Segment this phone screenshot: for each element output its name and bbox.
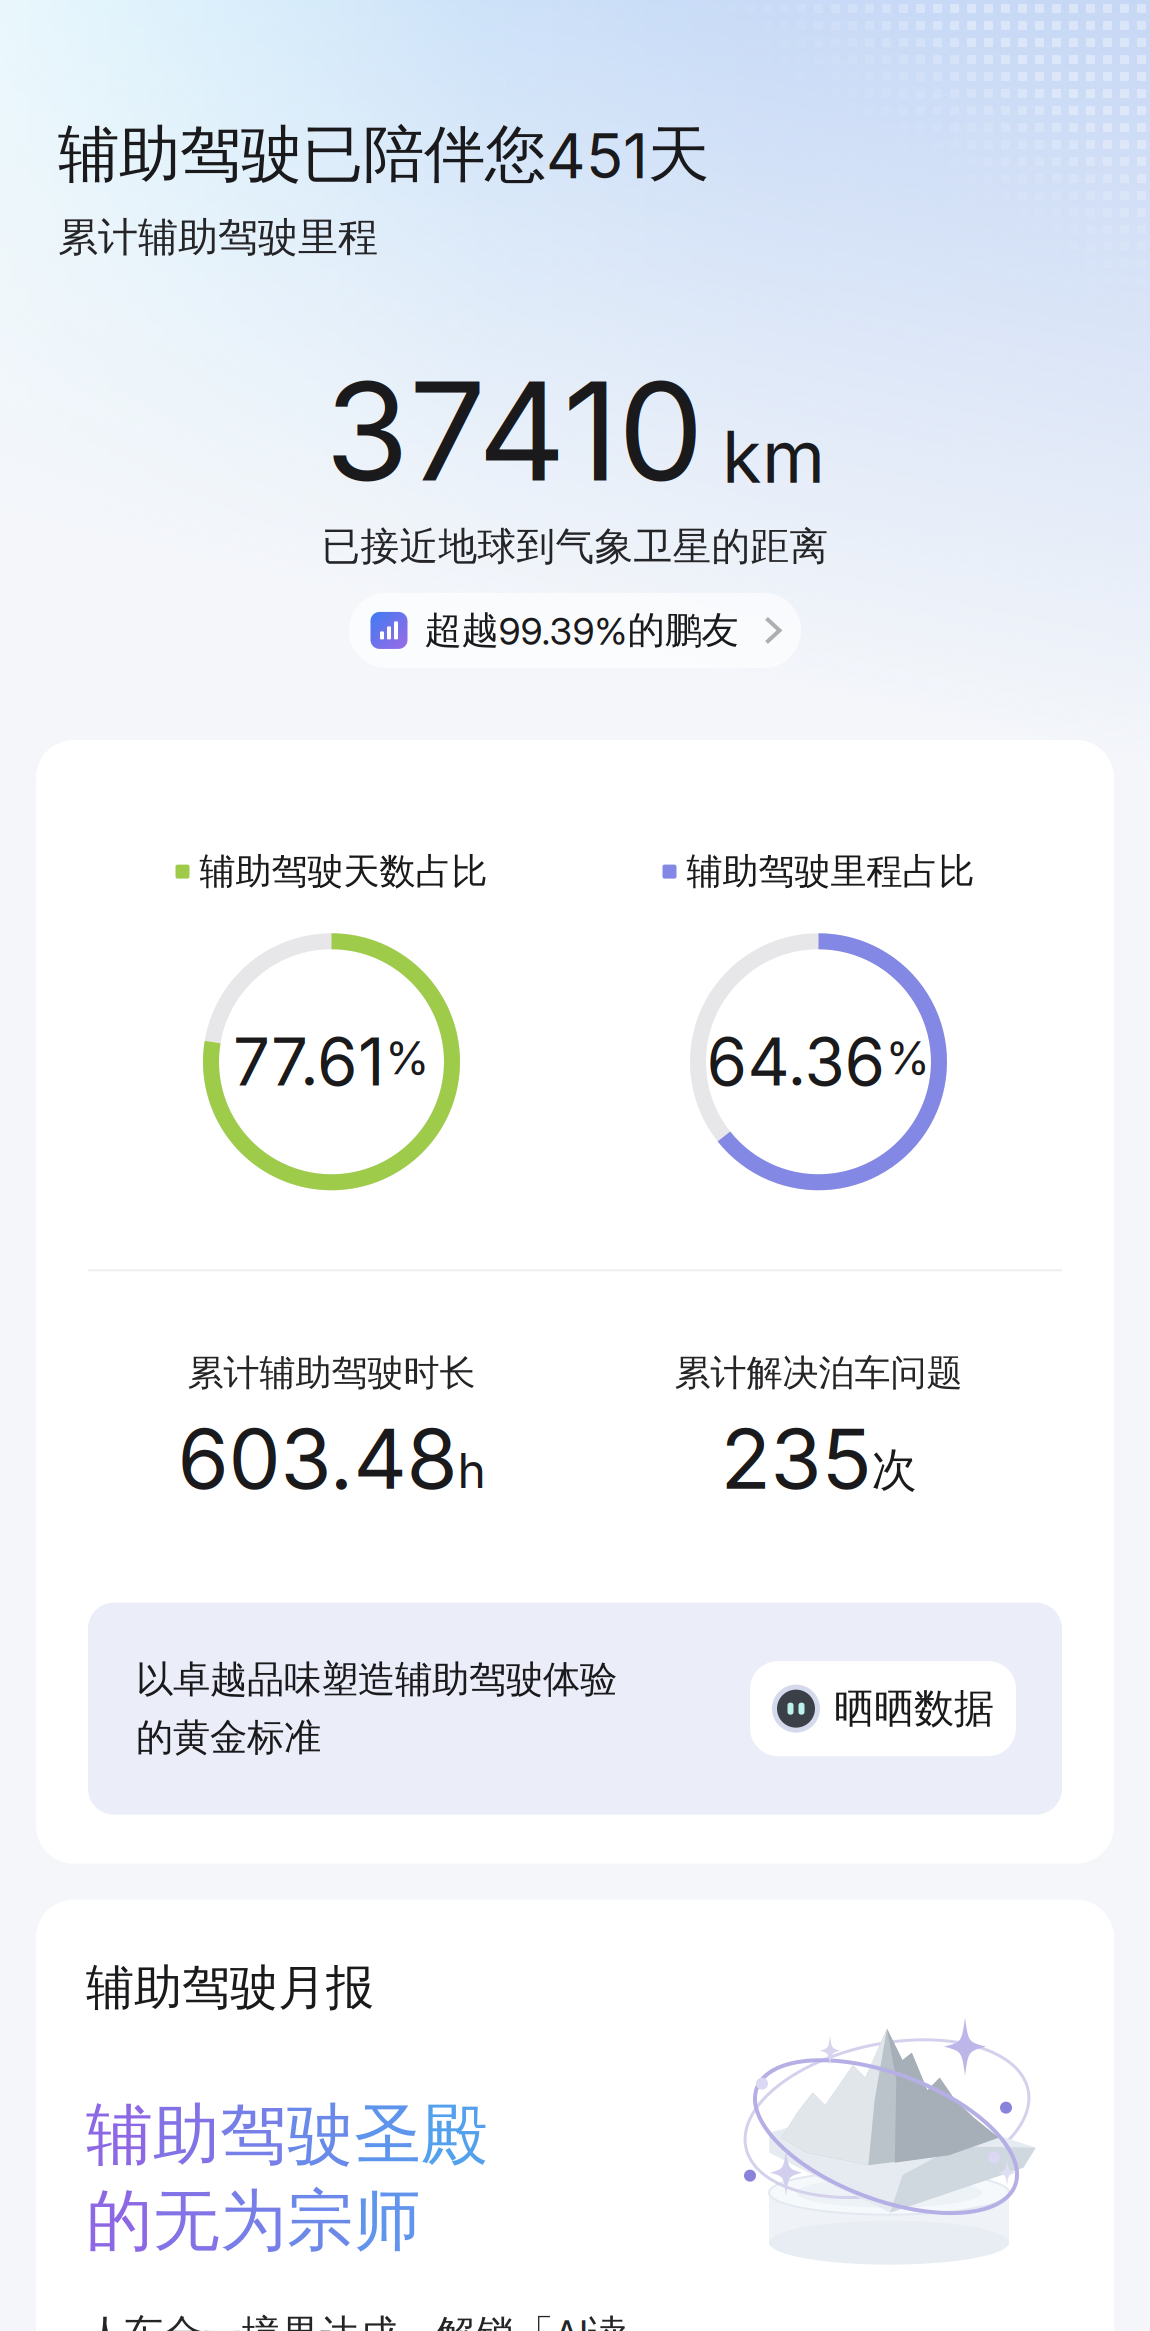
staticText: 64.36 — [706, 1022, 885, 1101]
staticText: 驾 — [220, 2093, 287, 2177]
staticText: 的黄金标准 — [136, 1714, 321, 1761]
button[interactable]: 晒晒数据 — [750, 1661, 1016, 1756]
staticText: 超越99.39%的鹏友 — [424, 607, 738, 654]
staticText: 殿 — [421, 2093, 488, 2177]
staticText: km — [722, 413, 825, 500]
staticText: 辅 — [86, 2093, 153, 2177]
staticText: 辅助驾驶已陪伴您451天 — [58, 116, 709, 193]
staticText: 宗 — [287, 2179, 354, 2263]
staticText: 已接近地球到气象卫星的距离 — [321, 522, 828, 571]
staticText: 助 — [153, 2093, 220, 2177]
staticText: 为 — [220, 2179, 287, 2263]
staticText: 37410 — [325, 349, 704, 513]
button[interactable]: 超越99.39%的鹏友 — [349, 593, 801, 668]
staticText: 无 — [153, 2179, 220, 2263]
staticText: 累计辅助驾驶时长 — [187, 1350, 475, 1396]
staticText: % — [385, 1030, 430, 1085]
staticText: 的 — [86, 2179, 153, 2263]
staticText: % — [885, 1030, 930, 1085]
staticText: 603.48 — [177, 1409, 457, 1509]
staticText: 辅助驾驶天数占比 — [199, 849, 487, 894]
staticText: h — [457, 1442, 485, 1500]
staticText: 师 — [354, 2179, 421, 2263]
staticText: 驶 — [287, 2093, 354, 2177]
staticText: 人车合一境界达成，解锁「AI读 — [86, 2310, 627, 2331]
staticText: 辅助驾驶里程占比 — [686, 849, 974, 894]
staticText: 圣 — [354, 2093, 421, 2177]
staticText: 累计解决泊车问题 — [674, 1350, 962, 1396]
staticText: 累计辅助驾驶里程 — [58, 212, 378, 263]
staticText: 辅助驾驶月报 — [86, 1958, 374, 2018]
staticText: 235 — [720, 1409, 871, 1509]
staticText: 次 — [871, 1441, 916, 1499]
staticText: 77.61 — [233, 1022, 385, 1101]
staticText: 以卓越品味塑造辅助驾驶体验 — [136, 1656, 617, 1703]
staticText: 晒晒数据 — [834, 1683, 994, 1734]
